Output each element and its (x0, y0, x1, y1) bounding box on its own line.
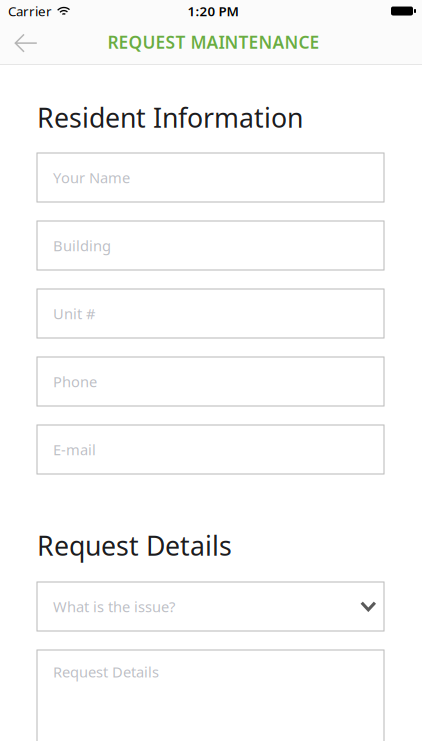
button[interactable]: Building (37, 221, 384, 270)
staticText: Request Details (53, 662, 159, 681)
staticText: Carrier (8, 2, 52, 20)
button[interactable]: Back (0, 22, 52, 64)
staticText: Building (53, 236, 111, 255)
staticText: Your Name (53, 168, 130, 187)
button[interactable]: What is the issue? (37, 582, 384, 631)
button[interactable]: Your Name (37, 153, 384, 202)
staticText: 1:20 PM (187, 2, 238, 20)
button[interactable]: E-mail (37, 425, 384, 474)
staticText: What is the issue? (53, 597, 175, 616)
button[interactable]: Unit # (37, 289, 384, 338)
staticText: REQUEST MAINTENANCE (107, 30, 319, 53)
staticText: E-mail (53, 440, 96, 459)
staticText: Unit # (53, 304, 95, 323)
button[interactable]: Request Details (37, 650, 384, 750)
staticText: Phone (53, 372, 97, 391)
button[interactable]: Phone (37, 357, 384, 406)
staticText: Request Details (37, 528, 232, 563)
staticText: Resident Information (37, 100, 303, 135)
